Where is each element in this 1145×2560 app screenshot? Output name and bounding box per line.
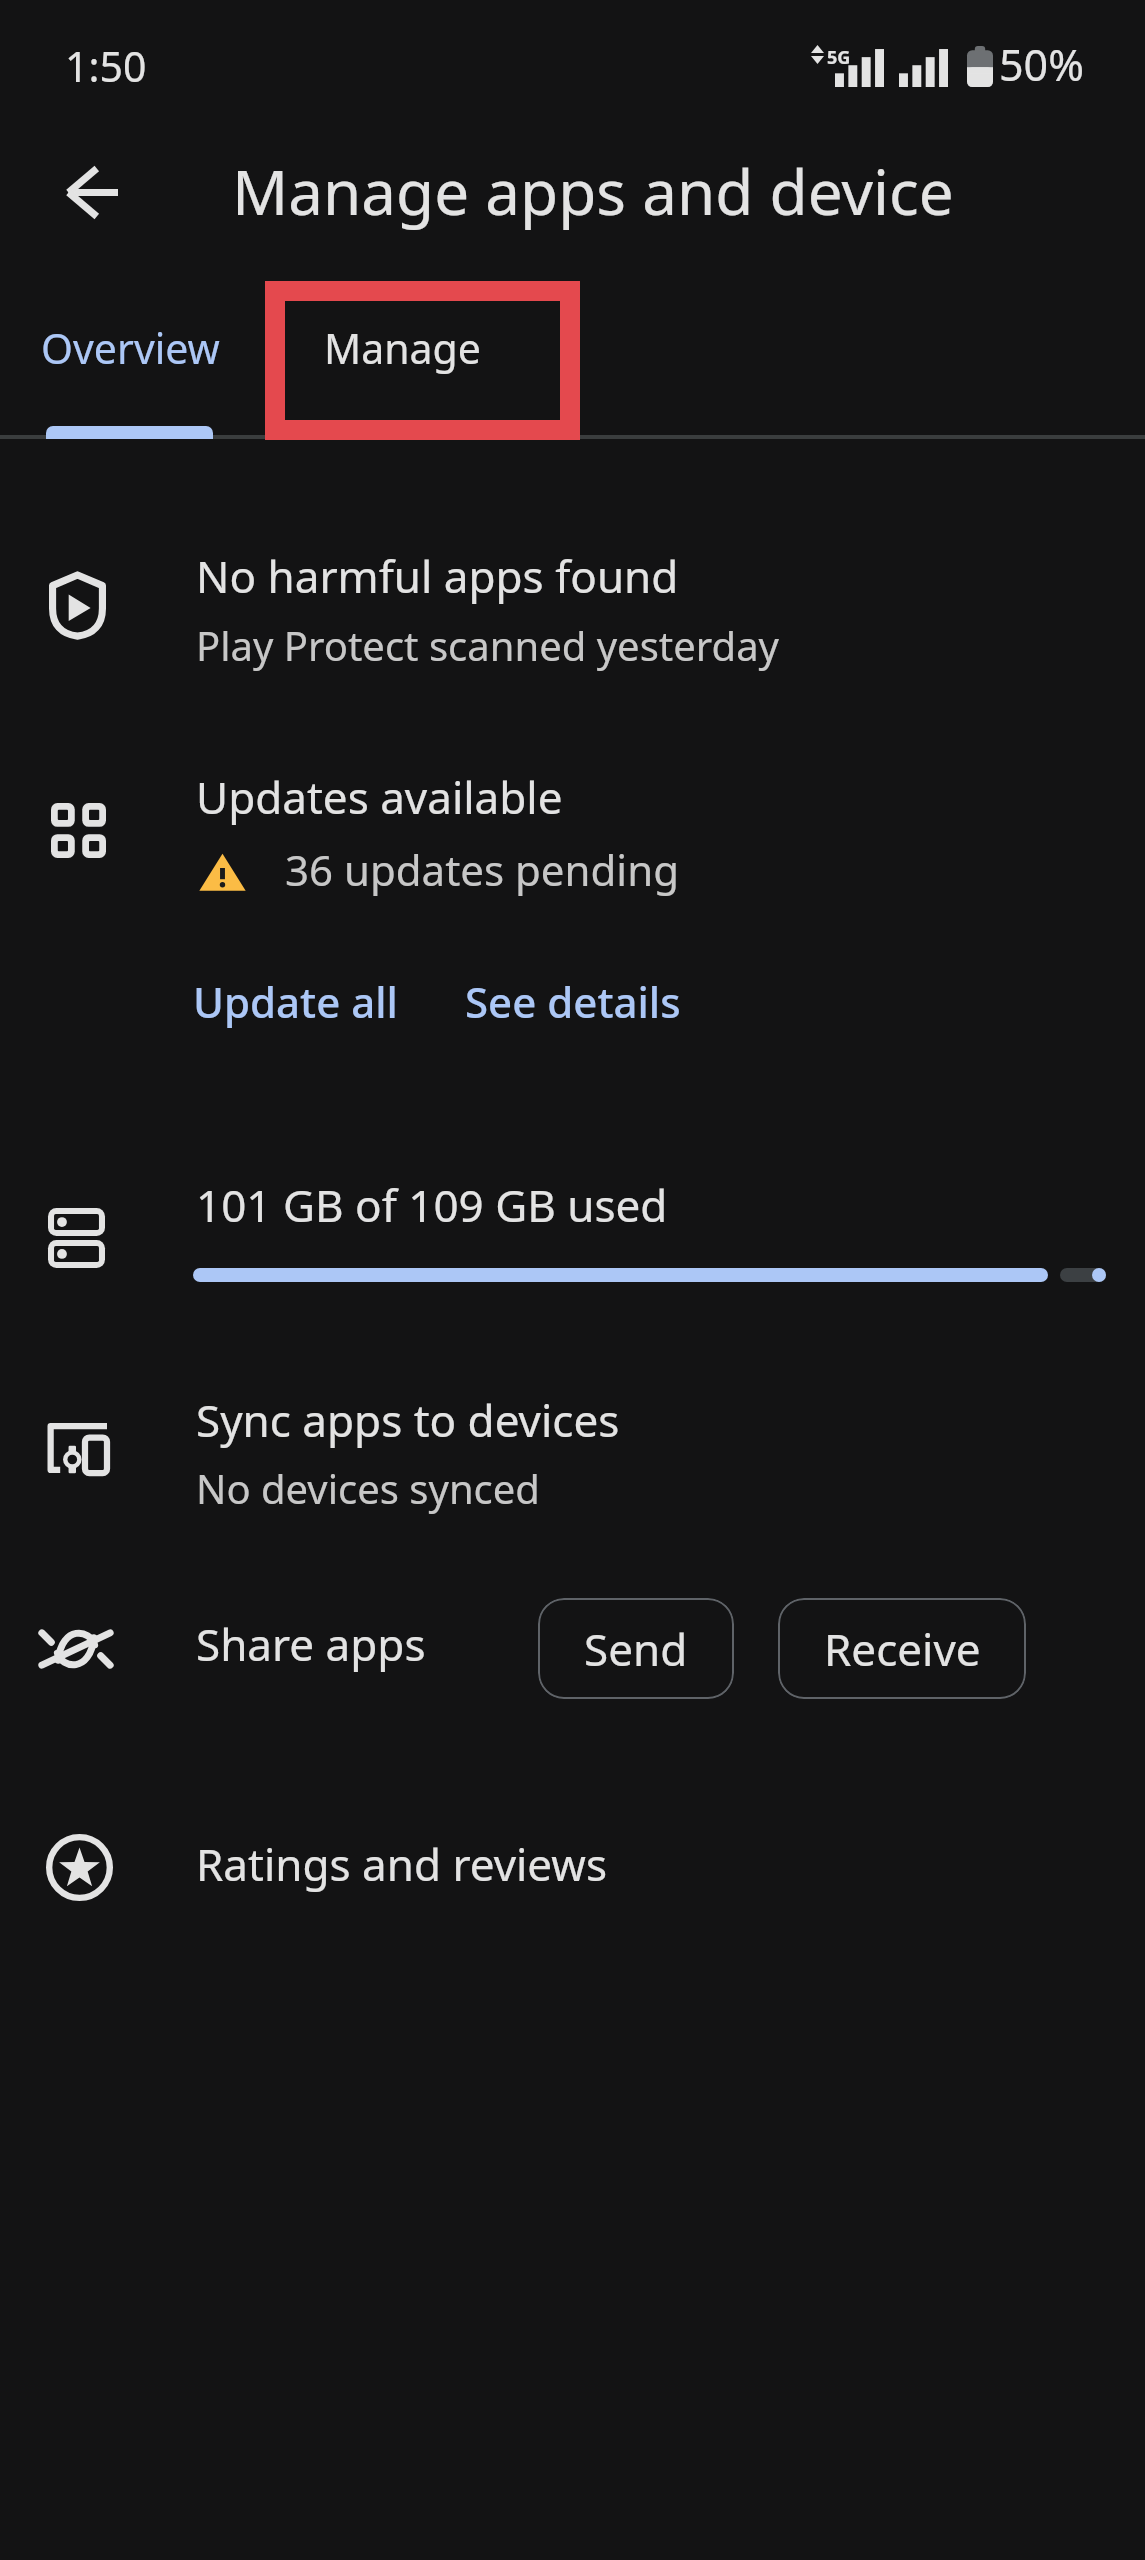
button[interactable]: Back <box>36 137 146 247</box>
button[interactable]: Update all <box>181 955 410 1047</box>
staticText: No devices synced <box>196 1461 540 1515</box>
button[interactable]: No harmful apps found <box>0 500 1145 686</box>
button[interactable]: See details <box>450 955 695 1047</box>
staticText: Update all <box>193 973 398 1030</box>
button[interactable]: Manage <box>265 282 580 440</box>
staticText: 5G <box>827 45 851 70</box>
button[interactable]: 101 GB of 109 GB used <box>0 1145 1145 1325</box>
button[interactable]: Updates available <box>0 740 1145 920</box>
staticText: 1:50 <box>65 38 147 94</box>
staticText: 50% <box>999 35 1084 94</box>
staticText: Overview <box>41 320 220 376</box>
staticText: 36 updates pending <box>285 841 679 898</box>
staticText: Manage apps and device <box>232 149 954 233</box>
staticText: Share apps <box>196 1614 426 1674</box>
staticText: See details <box>465 973 681 1030</box>
button[interactable]: Ratings and reviews <box>0 1790 1145 1948</box>
button[interactable]: Receive <box>778 1598 1026 1699</box>
staticText: Manage <box>324 320 481 376</box>
button[interactable]: Send <box>538 1598 734 1699</box>
staticText: Play Protect scanned yesterday <box>196 618 779 672</box>
button[interactable]: Sync apps to devices <box>0 1355 1145 1545</box>
staticText: Sync apps to devices <box>196 1390 620 1450</box>
staticText: No harmful apps found <box>196 546 679 606</box>
staticText: 101 GB of 109 GB used <box>196 1175 668 1235</box>
staticText: Ratings and reviews <box>196 1834 607 1894</box>
staticText: Send <box>584 1619 688 1679</box>
staticText: Receive <box>824 1619 981 1679</box>
staticText: Updates available <box>196 767 563 827</box>
button[interactable]: Overview <box>0 282 265 440</box>
